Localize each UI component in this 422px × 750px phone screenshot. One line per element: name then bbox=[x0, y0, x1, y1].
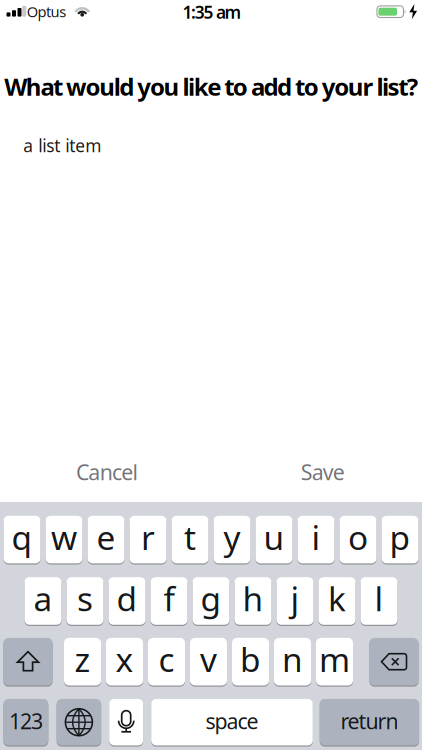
staticText: m bbox=[319, 637, 350, 681]
button[interactable]: Cancel bbox=[57, 450, 157, 494]
staticText: i bbox=[311, 515, 320, 559]
button[interactable]: q bbox=[0, 0, 422, 750]
button[interactable] bbox=[0, 0, 422, 750]
staticText: e bbox=[96, 515, 115, 559]
staticText: j bbox=[290, 576, 299, 621]
button[interactable]: j bbox=[0, 0, 422, 750]
button[interactable]: h bbox=[0, 0, 422, 750]
staticText: 1:35 am bbox=[182, 0, 242, 23]
button[interactable]: i bbox=[0, 0, 422, 750]
button[interactable] bbox=[0, 0, 422, 750]
button[interactable]: l bbox=[0, 0, 422, 750]
staticText: a bbox=[33, 576, 52, 621]
staticText: t bbox=[184, 515, 196, 559]
button[interactable]: u bbox=[0, 0, 422, 750]
button[interactable]: z bbox=[0, 0, 422, 750]
button[interactable]: Save bbox=[283, 450, 363, 494]
staticText: z bbox=[74, 637, 90, 681]
button[interactable]: e bbox=[0, 0, 422, 750]
button[interactable]: w bbox=[0, 0, 422, 750]
button[interactable]: o bbox=[0, 0, 422, 750]
staticText: 123 bbox=[9, 707, 43, 735]
button[interactable] bbox=[0, 0, 422, 750]
staticText: Save bbox=[301, 458, 345, 486]
button[interactable]: x bbox=[0, 0, 422, 750]
staticText: g bbox=[200, 576, 221, 621]
staticText: c bbox=[158, 637, 174, 681]
staticText: u bbox=[263, 515, 284, 559]
staticText: p bbox=[389, 515, 410, 559]
button[interactable]: return bbox=[0, 0, 422, 750]
button[interactable]: 123 bbox=[0, 0, 422, 750]
staticText: space bbox=[205, 707, 258, 735]
button[interactable]: c bbox=[0, 0, 422, 750]
staticText: h bbox=[242, 576, 263, 621]
staticText: d bbox=[116, 576, 137, 621]
staticText: l bbox=[374, 576, 383, 621]
staticText: b bbox=[240, 637, 261, 681]
staticText: Optus bbox=[27, 2, 66, 21]
staticText: k bbox=[328, 576, 346, 621]
staticText: v bbox=[200, 637, 217, 681]
button[interactable]: space bbox=[0, 0, 422, 750]
button[interactable]: v bbox=[0, 0, 422, 750]
button[interactable]: a bbox=[0, 0, 422, 750]
button[interactable]: n bbox=[0, 0, 422, 750]
staticText: What would you like to add to your list? bbox=[4, 71, 418, 102]
button[interactable]: f bbox=[0, 0, 422, 750]
staticText: Cancel bbox=[76, 458, 139, 486]
staticText: return bbox=[340, 707, 398, 735]
staticText: w bbox=[51, 515, 77, 559]
staticText: f bbox=[163, 576, 174, 621]
button[interactable]: p bbox=[0, 0, 422, 750]
button[interactable] bbox=[0, 0, 422, 750]
staticText: q bbox=[11, 515, 32, 559]
staticText: o bbox=[348, 515, 368, 559]
button[interactable]: r bbox=[0, 0, 422, 750]
button[interactable]: s bbox=[0, 0, 422, 750]
button[interactable]: d bbox=[0, 0, 422, 750]
staticText: n bbox=[282, 637, 303, 681]
button[interactable]: b bbox=[0, 0, 422, 750]
staticText: x bbox=[115, 637, 133, 681]
button[interactable]: k bbox=[0, 0, 422, 750]
staticText: s bbox=[77, 576, 93, 621]
button[interactable]: t bbox=[0, 0, 422, 750]
staticText: a list item bbox=[23, 134, 101, 157]
button[interactable]: g bbox=[0, 0, 422, 750]
staticText: r bbox=[141, 515, 155, 559]
button[interactable]: y bbox=[0, 0, 422, 750]
button[interactable]: m bbox=[0, 0, 422, 750]
staticText: y bbox=[223, 515, 240, 559]
